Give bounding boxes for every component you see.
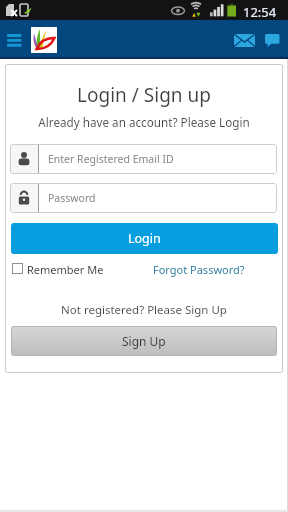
button[interactable]: [31, 27, 57, 53]
button[interactable]: Enter Registered Email ID: [10, 144, 277, 174]
button[interactable]: [12, 263, 23, 274]
button[interactable]: Login: [11, 223, 278, 254]
staticText: 12:54: [243, 3, 277, 21]
button[interactable]: Sign Up: [11, 326, 277, 356]
staticText: Login / Sign up: [0, 82, 288, 108]
staticText: Already have an account? Please Login: [0, 114, 288, 130]
button[interactable]: [230, 30, 258, 50]
staticText: Not registered? Please Sign Up: [0, 302, 288, 318]
button[interactable]: Forgot Password?: [152, 259, 246, 280]
staticText: Enter Registered Email ID: [48, 152, 174, 166]
staticText: Forgot Password?: [153, 262, 245, 277]
button[interactable]: Password: [10, 183, 277, 213]
staticText: Login: [128, 230, 161, 247]
button[interactable]: [4, 30, 26, 50]
staticText: Sign Up: [122, 333, 166, 349]
staticText: Remember Me: [27, 262, 104, 277]
staticText: Password: [48, 191, 96, 205]
button[interactable]: [261, 30, 283, 52]
